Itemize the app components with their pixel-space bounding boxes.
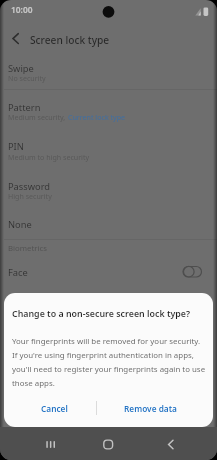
button[interactable] (0, 130, 217, 170)
staticText: Swipe (8, 62, 34, 75)
staticText: Change to a non-secure screen lock type? (12, 308, 191, 320)
staticText: Pattern (8, 101, 41, 114)
button[interactable] (38, 433, 62, 455)
button[interactable] (0, 90, 217, 130)
staticText: No security (8, 73, 46, 83)
staticText: If you're using fingerprint authenticati… (12, 350, 194, 361)
staticText: Biometrics (8, 243, 48, 254)
button[interactable] (158, 433, 182, 455)
staticText: PIN (8, 140, 24, 153)
button[interactable] (0, 170, 217, 210)
button[interactable] (0, 210, 217, 238)
button[interactable] (4, 29, 28, 51)
staticText: Screen lock type (30, 33, 110, 47)
staticText: you'll need to register your fingerprint… (12, 364, 206, 375)
staticText: None (8, 218, 32, 231)
button[interactable]: Cancel (12, 394, 96, 422)
staticText: 10:00 (11, 4, 33, 15)
staticText: Medium to high security (8, 152, 90, 162)
staticText: Face (8, 266, 28, 279)
staticText: Password (8, 180, 51, 193)
staticText: Your fingerprints will be removed for yo… (12, 336, 201, 347)
button[interactable]: Remove data (96, 394, 204, 422)
button[interactable] (0, 256, 217, 290)
staticText: Remove data (124, 403, 177, 414)
button[interactable] (0, 54, 217, 89)
staticText: Medium security, (8, 112, 68, 122)
staticText: Cancel (41, 403, 68, 414)
staticText: those apps. (12, 378, 55, 389)
button[interactable] (96, 433, 120, 455)
staticText: High security (8, 191, 52, 201)
staticText: Current lock type (68, 112, 126, 122)
